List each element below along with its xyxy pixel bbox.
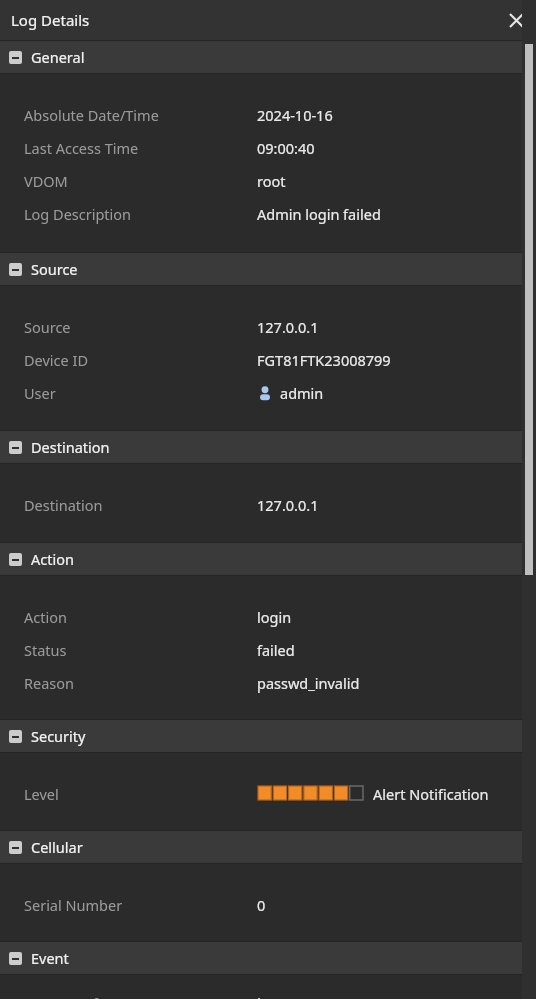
staticText: Event: [31, 948, 69, 968]
staticText: 0: [257, 895, 266, 915]
button[interactable]: Device ID: [0, 337, 536, 370]
staticText: Source: [24, 317, 71, 337]
staticText: Serial Number: [24, 895, 123, 915]
staticText: Alert Notification: [373, 784, 489, 804]
staticText: Security: [31, 726, 86, 746]
staticText: login: [257, 607, 292, 627]
button[interactable]: Security: [0, 720, 536, 752]
staticText: failed: [257, 640, 295, 660]
staticText: Action: [31, 549, 74, 569]
staticText: root: [257, 171, 286, 191]
button[interactable]: General: [0, 41, 536, 73]
button[interactable]: Source: [0, 304, 536, 337]
staticText: 127.0.0.1: [257, 317, 319, 337]
staticText: Log Description: [24, 204, 132, 224]
staticText: VDOM: [24, 171, 68, 191]
staticText: Device ID: [24, 350, 88, 370]
button[interactable]: Log Description: [0, 191, 536, 224]
staticText: Source: [31, 259, 78, 279]
staticText: passwd_invalid: [257, 673, 360, 693]
staticText: Admin login failed: [257, 204, 381, 224]
button[interactable]: Action: [0, 543, 536, 575]
staticText: User Interface: [24, 993, 122, 999]
button[interactable]: Scroll: [522, 0, 536, 999]
staticText: 2024-10-16: [257, 105, 333, 125]
button[interactable]: VDOM: [0, 158, 536, 191]
button[interactable]: Reason: [0, 660, 536, 693]
staticText: Status: [24, 640, 67, 660]
button[interactable]: Destination: [0, 482, 536, 515]
button[interactable]: Close: [496, 0, 536, 40]
staticText: Last Access Time: [24, 138, 139, 158]
button[interactable]: Event: [0, 942, 536, 974]
staticText: Destination: [31, 437, 110, 457]
staticText: http(127.0.0.1): [257, 993, 356, 999]
staticText: Reason: [24, 673, 75, 693]
staticText: admin: [280, 383, 324, 403]
button[interactable]: Action: [0, 594, 536, 627]
staticText: User: [24, 383, 56, 403]
button[interactable]: User: [0, 370, 536, 403]
button[interactable]: Level: [0, 771, 536, 804]
staticText: Level: [24, 784, 59, 804]
staticText: 09:00:40: [257, 138, 315, 158]
button[interactable]: Absolute Date/Time: [0, 92, 536, 125]
staticText: FGT81FTK23008799: [257, 350, 391, 370]
staticText: Absolute Date/Time: [24, 105, 159, 125]
staticText: General: [31, 47, 85, 67]
button[interactable]: Status: [0, 627, 536, 660]
button[interactable]: Cellular: [0, 831, 536, 863]
staticText: Log Details: [11, 10, 90, 30]
button[interactable]: Serial Number: [0, 882, 536, 915]
button[interactable]: User Interface: [0, 993, 536, 999]
button[interactable]: Source: [0, 253, 536, 285]
staticText: Destination: [24, 495, 103, 515]
button[interactable]: Last Access Time: [0, 125, 536, 158]
button[interactable]: Destination: [0, 431, 536, 463]
staticText: 127.0.0.1: [257, 495, 319, 515]
staticText: Cellular: [31, 837, 83, 857]
staticText: Action: [24, 607, 67, 627]
